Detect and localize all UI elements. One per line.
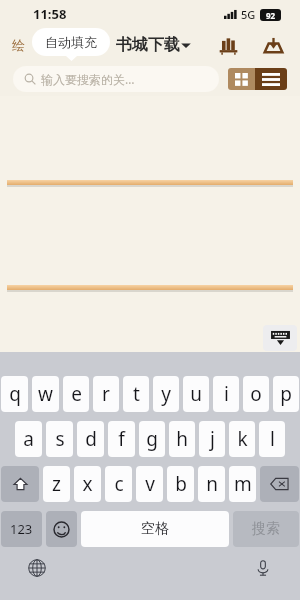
staticText: 搜索 xyxy=(252,520,280,538)
button[interactable]: Hide keyboard xyxy=(263,325,297,351)
staticText: f xyxy=(118,426,125,452)
button[interactable]: 123 xyxy=(1,511,42,547)
staticText: 绘 xyxy=(12,37,25,53)
staticText: a xyxy=(23,426,34,452)
button[interactable]: y xyxy=(153,376,179,412)
button[interactable]: z xyxy=(43,466,70,502)
staticText: v xyxy=(145,471,155,497)
button[interactable]: n xyxy=(198,466,225,502)
button[interactable]: h xyxy=(169,421,195,457)
staticText: s xyxy=(55,426,65,452)
button[interactable]: Emoji xyxy=(46,511,77,547)
staticText: w xyxy=(38,381,53,407)
staticText: y xyxy=(161,381,171,407)
button[interactable]: Bookshelf xyxy=(212,29,244,61)
staticText: 书城下载 xyxy=(116,35,180,55)
staticText: h xyxy=(176,426,188,452)
button[interactable]: t xyxy=(123,376,149,412)
staticText: i xyxy=(224,381,229,407)
button[interactable]: u xyxy=(183,376,209,412)
button[interactable]: 搜索 xyxy=(233,511,299,547)
staticText: 123 xyxy=(10,520,33,538)
button[interactable]: p xyxy=(273,376,299,412)
staticText: 11:58 xyxy=(33,5,67,23)
button[interactable]: v xyxy=(136,466,163,502)
staticText: k xyxy=(237,426,248,452)
button[interactable]: 书城下载 xyxy=(116,35,192,55)
button[interactable]: k xyxy=(229,421,255,457)
button[interactable]: b xyxy=(167,466,194,502)
staticText: g xyxy=(146,426,158,452)
staticText: 输入要搜索的关… xyxy=(41,71,135,87)
button[interactable]: w xyxy=(32,376,59,412)
button[interactable]: j xyxy=(199,421,225,457)
staticText: t xyxy=(133,381,140,407)
staticText: 自动填充 xyxy=(45,34,97,50)
staticText: 5G xyxy=(241,7,256,22)
button[interactable]: l xyxy=(259,421,285,457)
staticText: n xyxy=(206,471,218,497)
button[interactable]: Backspace xyxy=(260,466,299,502)
button[interactable]: Downloads xyxy=(257,29,289,61)
staticText: d xyxy=(85,426,97,452)
staticText: l xyxy=(270,426,275,452)
button[interactable]: c xyxy=(105,466,132,502)
staticText: x xyxy=(82,471,93,497)
button[interactable]: 自动填充 xyxy=(32,28,110,56)
button[interactable]: m xyxy=(229,466,256,502)
button[interactable]: e xyxy=(63,376,89,412)
button[interactable]: Voice input xyxy=(248,553,278,583)
button[interactable]: Change keyboard xyxy=(22,553,52,583)
staticText: z xyxy=(52,471,61,497)
staticText: r xyxy=(102,381,110,407)
staticText: j xyxy=(210,426,215,452)
staticText: 92 xyxy=(266,10,276,21)
button[interactable]: i xyxy=(213,376,239,412)
staticText: 空格 xyxy=(141,520,169,538)
staticText: p xyxy=(280,381,292,407)
button[interactable]: s xyxy=(46,421,73,457)
button[interactable]: 输入要搜索的关… xyxy=(13,66,219,92)
button[interactable]: r xyxy=(93,376,119,412)
staticText: c xyxy=(114,471,124,497)
button[interactable]: Shift xyxy=(1,466,39,502)
staticText: u xyxy=(190,381,202,407)
button[interactable]: Grid view xyxy=(228,68,255,90)
button[interactable]: d xyxy=(77,421,104,457)
button[interactable]: o xyxy=(243,376,269,412)
staticText: o xyxy=(250,381,262,407)
button[interactable]: x xyxy=(74,466,101,502)
staticText: b xyxy=(175,471,187,497)
staticText: e xyxy=(71,381,82,407)
staticText: q xyxy=(9,381,21,407)
staticText: m xyxy=(234,471,252,497)
button[interactable]: List view xyxy=(255,68,287,90)
button[interactable]: g xyxy=(139,421,165,457)
button[interactable]: a xyxy=(15,421,42,457)
button[interactable]: f xyxy=(108,421,135,457)
button[interactable]: q xyxy=(1,376,28,412)
button[interactable]: 空格 xyxy=(81,511,229,547)
